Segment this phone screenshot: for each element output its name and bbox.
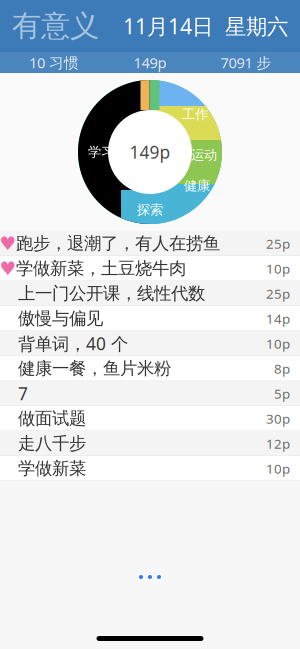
button[interactable]: ♥	[0, 256, 300, 281]
staticText: 30p	[266, 410, 290, 427]
staticText: 149p	[133, 53, 166, 72]
staticText: 12p	[266, 435, 290, 452]
staticText: 10p	[266, 335, 290, 352]
staticText: 学做新菜，土豆烧牛肉	[16, 258, 186, 279]
button[interactable]: ♥	[0, 231, 300, 256]
staticText: 健康	[184, 178, 210, 194]
staticText: 149p	[129, 140, 170, 163]
staticText: 运动	[191, 147, 217, 163]
staticText: 健康一餐，鱼片米粉	[18, 358, 171, 379]
button[interactable]: More	[129, 565, 171, 589]
button[interactable]: 背单词，40 个	[0, 331, 300, 356]
staticText: ♥	[0, 258, 16, 279]
button[interactable]: 学做新菜	[0, 456, 300, 481]
staticText: 学做新菜	[18, 458, 86, 479]
staticText: 学习	[88, 144, 114, 160]
staticText: 跑步，退潮了，有人在捞鱼	[16, 233, 220, 254]
button[interactable]: 傲慢与偏见	[0, 306, 300, 331]
button[interactable]: 做面试题	[0, 406, 300, 431]
staticText: 有意义	[12, 8, 99, 44]
staticText: 25p	[266, 285, 290, 302]
staticText: 上一门公开课，线性代数	[18, 283, 205, 304]
staticText: 8p	[274, 360, 290, 377]
button[interactable]: 上一门公开课，线性代数	[0, 281, 300, 306]
staticText: 14p	[266, 310, 290, 327]
button[interactable]: 健康一餐，鱼片米粉	[0, 356, 300, 381]
staticText: 10p	[266, 460, 290, 477]
staticText: 7	[18, 382, 28, 405]
staticText: 10 习惯	[29, 53, 79, 72]
button[interactable]: 7	[0, 381, 300, 406]
staticText: 7091 步	[220, 53, 271, 72]
staticText: 探索	[137, 202, 163, 218]
staticText: 做面试题	[18, 408, 86, 429]
button[interactable]: 走八千步	[0, 431, 300, 456]
staticText: 工作	[182, 106, 208, 122]
staticText: 5p	[274, 385, 290, 402]
staticText: 走八千步	[18, 433, 86, 454]
staticText: 25p	[266, 235, 290, 252]
staticText: 10p	[266, 260, 290, 277]
staticText: 傲慢与偏见	[18, 308, 103, 329]
staticText: 背单词，40 个	[18, 332, 128, 355]
staticText: ♥	[0, 233, 16, 254]
staticText: 11月14日 星期六	[123, 12, 288, 40]
